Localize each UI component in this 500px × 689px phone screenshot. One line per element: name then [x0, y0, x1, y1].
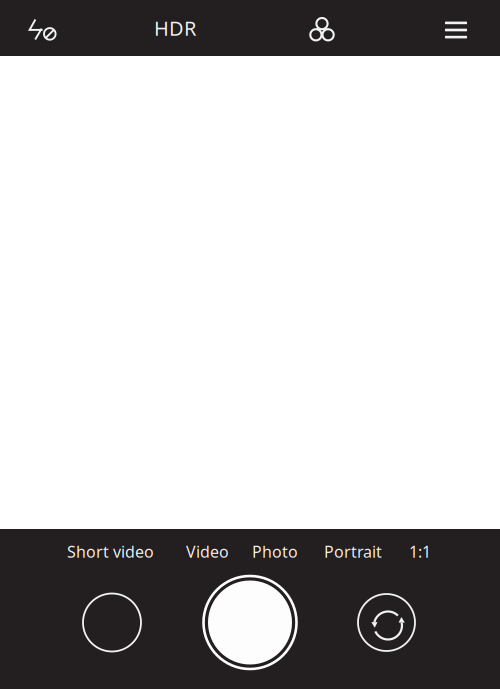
button[interactable]: Short video: [62, 534, 159, 569]
button[interactable]: Portrait: [319, 534, 387, 569]
staticText: 1:1: [409, 541, 431, 562]
button[interactable]: Photo: [247, 534, 303, 569]
button[interactable]: Video: [181, 534, 234, 569]
button[interactable]: Flash off: [15, 0, 71, 56]
button[interactable]: HDR: [144, 0, 206, 56]
staticText: Video: [186, 541, 229, 562]
button[interactable]: 1:1: [404, 534, 436, 569]
button[interactable]: Take photo: [202, 574, 298, 670]
button[interactable]: Photo library: [83, 593, 141, 651]
staticText: Photo: [252, 541, 298, 562]
staticText: HDR: [154, 15, 196, 41]
staticText: Portrait: [324, 541, 382, 562]
staticText: Short video: [67, 541, 154, 562]
button[interactable]: Filters: [293, 0, 349, 56]
button[interactable]: Menu: [428, 0, 484, 56]
button[interactable]: Switch camera: [357, 593, 416, 652]
